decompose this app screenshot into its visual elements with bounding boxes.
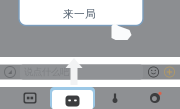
button[interactable]: Favorites	[95, 87, 135, 109]
staticText: 来一局	[63, 7, 96, 20]
button[interactable]: More	[164, 66, 175, 77]
button[interactable]: Voice message	[4, 66, 16, 78]
button[interactable]: Stickers	[50, 87, 95, 109]
staticText: 说点什么吧	[24, 66, 69, 78]
button[interactable]: Emoji	[148, 66, 159, 77]
button[interactable]: 说点什么吧	[20, 64, 143, 79]
button[interactable]: Sticker store	[135, 87, 175, 109]
button[interactable]: Photos	[10, 87, 50, 109]
